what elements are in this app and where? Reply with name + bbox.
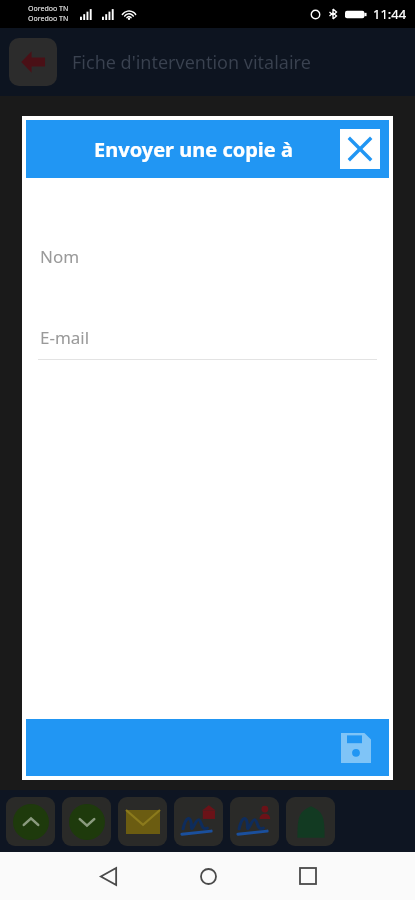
button[interactable]: Autre bbox=[286, 797, 335, 846]
staticText: 11:44 bbox=[373, 5, 407, 23]
staticText: Ooredoo TN bbox=[28, 14, 69, 24]
staticText: Ooredoo TN bbox=[28, 4, 69, 14]
button[interactable]: Retour bbox=[9, 38, 57, 86]
staticText: Envoyer une copie à bbox=[94, 136, 293, 163]
staticText: Nom bbox=[40, 245, 80, 268]
button[interactable]: Signature responsable bbox=[174, 797, 223, 846]
button[interactable]: Nom bbox=[38, 240, 377, 279]
button[interactable]: Enregistrer bbox=[26, 719, 389, 776]
staticText: Fiche d'intervention vitalaire bbox=[72, 50, 311, 75]
button[interactable]: Accueil bbox=[180, 852, 236, 900]
button[interactable]: Retour bbox=[80, 852, 136, 900]
button[interactable]: Descendre bbox=[62, 797, 111, 846]
staticText: E-mail bbox=[40, 326, 90, 349]
button[interactable]: Envoyer une copie à bbox=[26, 120, 389, 178]
button[interactable]: E-mail bbox=[38, 321, 377, 360]
button[interactable]: E-mail bbox=[118, 797, 167, 846]
button[interactable]: Fermer bbox=[340, 129, 380, 169]
button[interactable]: Applications récentes bbox=[280, 852, 336, 900]
button[interactable]: Signature client bbox=[230, 797, 279, 846]
button[interactable]: Remonter bbox=[6, 797, 55, 846]
